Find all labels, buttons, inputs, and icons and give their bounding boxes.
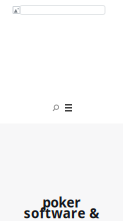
staticText: poker bbox=[42, 193, 80, 211]
button[interactable]: Search bbox=[20, 5, 105, 14]
button[interactable]: Site logo bbox=[13, 6, 20, 13]
button[interactable]: Search bbox=[52, 104, 59, 111]
staticText: software & bbox=[24, 204, 99, 221]
button[interactable]: Menu bbox=[65, 104, 72, 112]
